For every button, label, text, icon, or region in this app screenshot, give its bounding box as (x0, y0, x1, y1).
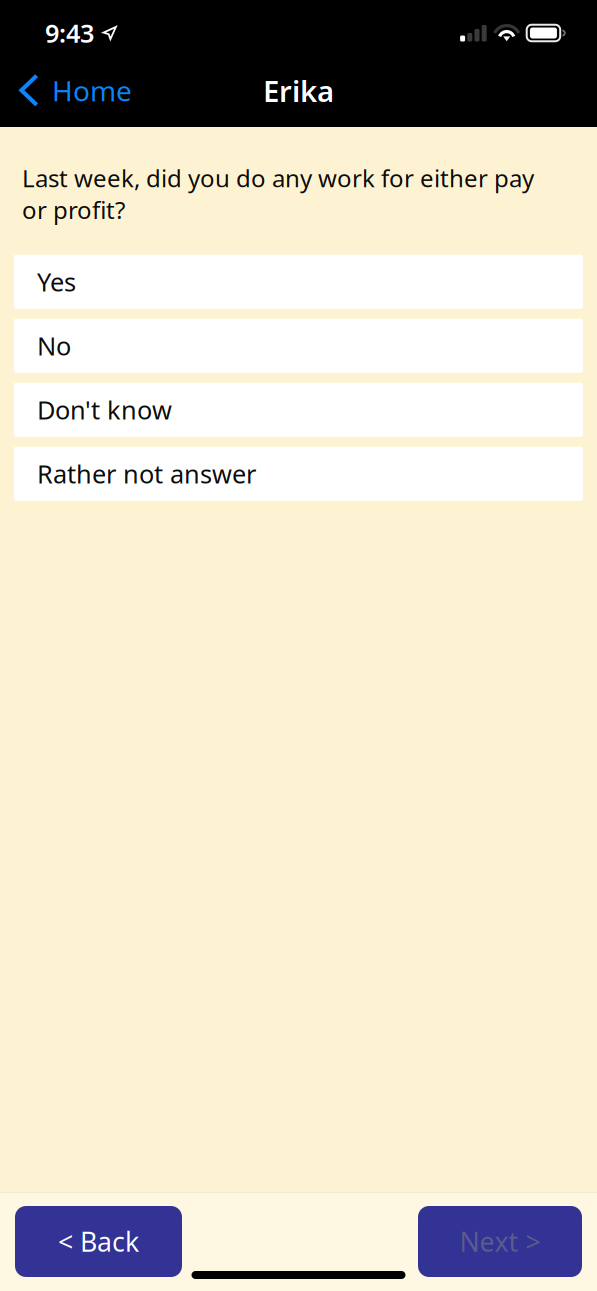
button[interactable]: Don't know (14, 383, 583, 437)
staticText: 9:43 (45, 16, 94, 50)
staticText: No (37, 329, 71, 362)
staticText: Rather not answer (37, 457, 256, 490)
staticText: Next > (459, 1224, 540, 1259)
staticText: Yes (37, 265, 76, 298)
staticText: Home (52, 72, 132, 109)
button[interactable]: Next > (418, 1206, 582, 1277)
staticText: Erika (263, 71, 334, 110)
button[interactable]: No (14, 319, 583, 373)
button[interactable]: Rather not answer (14, 447, 583, 501)
button[interactable]: Yes (14, 255, 583, 309)
staticText: < Back (58, 1224, 139, 1259)
staticText: Last week, did you do any work for eithe… (22, 162, 534, 226)
staticText: Don't know (37, 393, 172, 426)
button[interactable]: < Back (15, 1206, 182, 1277)
button[interactable]: Back to Home (0, 64, 142, 117)
